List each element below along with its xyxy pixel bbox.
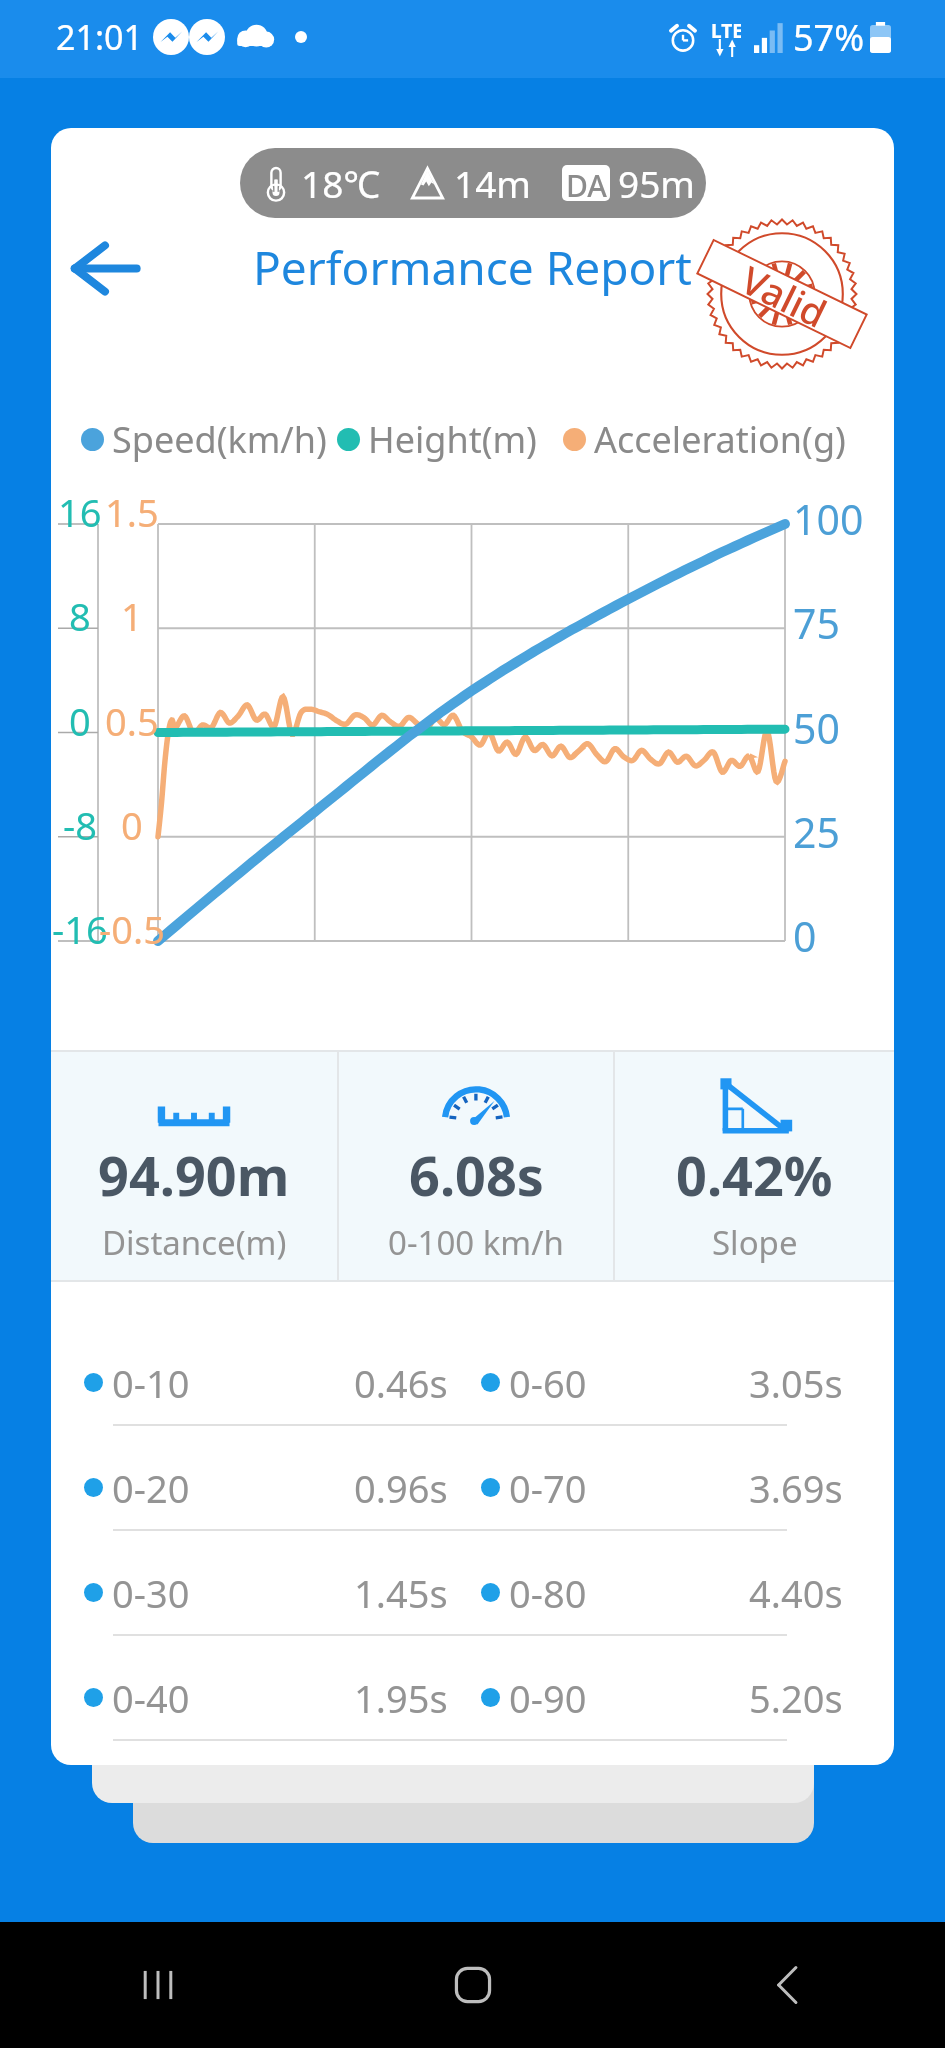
staticText: 0-60 xyxy=(509,1357,587,1409)
staticText: 0.46s xyxy=(354,1357,448,1409)
staticText: 0-80 xyxy=(509,1567,587,1619)
staticText: 50 xyxy=(793,700,840,756)
staticText: 100 xyxy=(793,491,864,547)
button[interactable]: 18℃ xyxy=(240,148,706,218)
staticText: -8 xyxy=(63,799,97,851)
staticText: 0-90 xyxy=(509,1672,587,1724)
staticText: 94.90m xyxy=(98,1138,290,1212)
staticText: 0 xyxy=(69,695,91,747)
button[interactable]: 0-80 xyxy=(448,1551,843,1634)
staticText: 5.20s xyxy=(749,1672,843,1724)
staticText: 0 xyxy=(793,908,817,964)
button[interactable]: 0-30 xyxy=(51,1551,448,1634)
staticText: 6.08s xyxy=(409,1138,544,1212)
button[interactable]: 0.42% xyxy=(615,1052,894,1280)
staticText: 14m xyxy=(454,158,531,208)
staticText: LTE xyxy=(711,18,741,44)
staticText: Slope xyxy=(712,1220,798,1265)
staticText: 4.40s xyxy=(749,1567,843,1619)
staticText: 0-10 xyxy=(112,1357,190,1409)
staticText: Speed(km/h) xyxy=(112,415,327,464)
staticText: 75 xyxy=(793,595,840,651)
staticText: 0-20 xyxy=(112,1462,190,1514)
staticText: 0-100 km/h xyxy=(388,1220,564,1265)
button[interactable]: Recents xyxy=(0,1922,315,2048)
staticText: Valid xyxy=(733,253,836,339)
staticText: Height(m) xyxy=(368,415,537,464)
staticText: 3.05s xyxy=(749,1357,843,1409)
button[interactable]: 94.90m xyxy=(51,1052,337,1280)
staticText: 3.69s xyxy=(749,1462,843,1514)
staticText: 18℃ xyxy=(301,158,381,208)
staticText: 0-30 xyxy=(112,1567,190,1619)
staticText: Acceleration(g) xyxy=(594,415,846,464)
button[interactable]: 0-10 xyxy=(51,1341,448,1424)
button[interactable]: 0-40 xyxy=(51,1656,448,1739)
staticText: 1.45s xyxy=(354,1567,448,1619)
staticText: 1 xyxy=(121,590,143,642)
staticText: 1.95s xyxy=(354,1672,448,1724)
staticText: DA xyxy=(566,165,607,201)
button[interactable]: 6.08s xyxy=(339,1052,613,1280)
staticText: -16 xyxy=(52,903,108,955)
staticText: Distance(m) xyxy=(102,1220,287,1265)
button[interactable]: Home xyxy=(315,1922,630,2048)
button[interactable]: Back xyxy=(59,222,151,314)
button[interactable]: Back xyxy=(630,1922,945,2048)
button[interactable]: 0-20 xyxy=(51,1446,448,1529)
staticText: 1.5 xyxy=(105,486,159,538)
staticText: Performance Report xyxy=(253,236,692,299)
staticText: 0.96s xyxy=(354,1462,448,1514)
button[interactable]: 0-70 xyxy=(448,1446,843,1529)
staticText: -0.5 xyxy=(99,903,165,955)
staticText: 95m xyxy=(618,158,695,208)
staticText: 0.5 xyxy=(105,695,159,747)
button[interactable]: 0-60 xyxy=(448,1341,843,1424)
staticText: 0 xyxy=(121,799,143,851)
staticText: 25 xyxy=(793,804,840,860)
button[interactable]: 0-90 xyxy=(448,1656,843,1739)
staticText: 0-70 xyxy=(509,1462,587,1514)
staticText: 21:01 xyxy=(56,14,143,60)
staticText: 57% xyxy=(793,13,865,62)
staticText: 8 xyxy=(69,590,91,642)
staticText: 0.42% xyxy=(676,1138,833,1212)
staticText: 0-40 xyxy=(112,1672,190,1724)
staticText: 16 xyxy=(58,486,102,538)
